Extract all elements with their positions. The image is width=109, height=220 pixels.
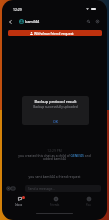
staticText: Friends: [50, 203, 60, 207]
button[interactable]: Friends: [46, 196, 64, 207]
staticText: Backup protocol result: [22, 99, 89, 104]
staticText: kamil44: [25, 19, 40, 24]
staticText: Inbox: [15, 203, 23, 207]
button[interactable]: Back: [6, 17, 15, 26]
staticText: You: [86, 203, 91, 207]
button[interactable]: You: [79, 196, 97, 207]
staticText: OK: [53, 119, 59, 124]
button[interactable]: Search: [84, 17, 93, 26]
staticText: 12:29: [13, 7, 22, 12]
staticText: Backup successfully uploaded: [22, 105, 89, 109]
staticText: Send a message...: [28, 187, 55, 191]
button[interactable]: OK: [22, 117, 89, 125]
staticText: Withdraw friend request: [34, 31, 74, 36]
button[interactable]: Settings: [93, 17, 102, 26]
staticText: 12:29 PM: [2, 148, 107, 152]
button[interactable]: Withdraw friend request: [8, 30, 102, 36]
button[interactable]: Inbox: [10, 196, 28, 207]
staticText: you sent kamil44 a friend request: [2, 174, 107, 178]
button[interactable]: Send a GIF: [9, 184, 17, 192]
button[interactable]: Add attachment: [4, 184, 12, 192]
staticText: you created this chat as a child of GENE…: [15, 153, 94, 161]
button[interactable]: Send a message...: [25, 185, 101, 192]
